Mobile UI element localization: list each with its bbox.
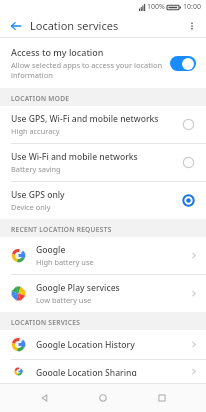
staticText: Google xyxy=(36,244,66,256)
staticText: Device only xyxy=(11,202,51,212)
staticText: 10:00 xyxy=(183,2,201,12)
staticText: Access to my location xyxy=(11,46,104,58)
staticText: Battery saving xyxy=(11,164,61,174)
staticText: Use Wi-Fi and mobile networks xyxy=(11,151,138,163)
button[interactable]: Google Play services xyxy=(0,275,206,312)
staticText: High battery use xyxy=(36,257,94,267)
staticText: High accuracy xyxy=(11,126,60,136)
button[interactable]: Access to my location xyxy=(0,38,206,88)
button[interactable]: Use Wi-Fi and mobile networks xyxy=(0,144,206,181)
button[interactable]: Back xyxy=(31,384,59,412)
staticText: LOCATION MODE xyxy=(11,94,70,103)
button[interactable]: Google xyxy=(0,237,206,274)
button[interactable]: Google Location Sharing xyxy=(0,360,206,383)
button[interactable]: Home xyxy=(89,384,117,412)
button[interactable]: Use GPS only xyxy=(0,182,206,219)
button[interactable]: More options xyxy=(182,16,202,36)
button[interactable]: Access to my location toggle xyxy=(170,56,196,71)
staticText: LOCATION SERVICES xyxy=(11,318,81,327)
staticText: Use GPS only xyxy=(11,189,65,201)
staticText: Use GPS, Wi-Fi and mobile networks xyxy=(11,113,159,125)
staticText: Google Location History xyxy=(36,339,135,351)
staticText: Google Play services xyxy=(36,282,120,294)
staticText: Low battery use xyxy=(36,295,92,305)
button[interactable]: Use GPS, Wi-Fi and mobile networks xyxy=(0,106,206,143)
staticText: Google Location Sharing xyxy=(36,367,137,376)
staticText: RECENT LOCATION REQUESTS xyxy=(11,225,112,234)
button[interactable]: Google Location History xyxy=(0,330,206,359)
staticText: Allow selected apps to access your locat… xyxy=(11,60,164,80)
button[interactable]: Recent apps xyxy=(148,384,176,412)
staticText: 100% xyxy=(147,2,165,12)
button[interactable]: Back xyxy=(6,16,26,36)
staticText: Location services xyxy=(30,18,119,33)
